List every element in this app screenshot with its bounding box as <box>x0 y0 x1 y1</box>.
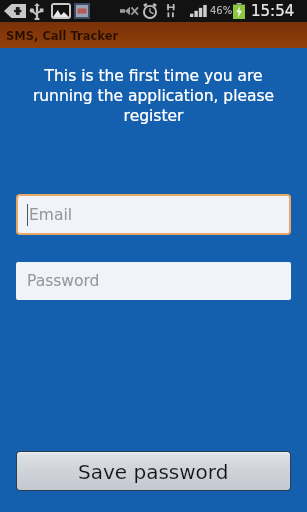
staticText: Email <box>29 206 73 224</box>
staticText: 15:54 <box>251 2 295 19</box>
staticText: This is the first time you are running t… <box>30 67 277 125</box>
staticText: 46% <box>210 5 233 17</box>
button[interactable]: Save password <box>17 452 290 490</box>
staticText: SMS, Call Tracker <box>6 29 119 42</box>
staticText: Save password <box>78 460 229 483</box>
button[interactable]: Email <box>18 196 289 233</box>
staticText: Password <box>27 272 100 290</box>
button[interactable]: Password <box>16 262 291 300</box>
